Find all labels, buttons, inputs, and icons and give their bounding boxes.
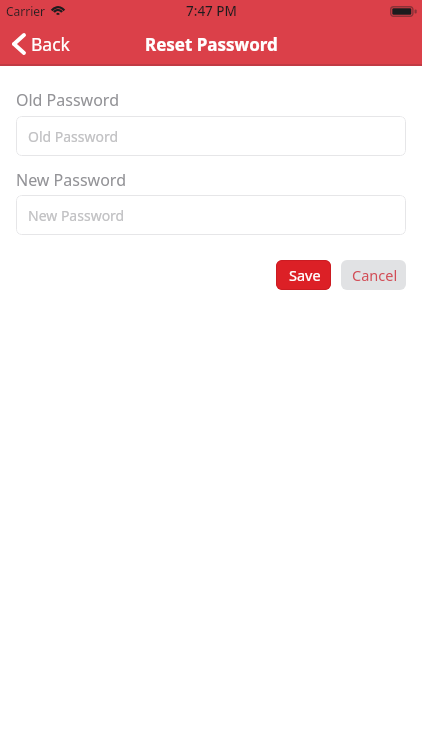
staticText: Carrier [6, 3, 46, 19]
staticText: Save [289, 265, 321, 285]
staticText: 7:47 PM [186, 2, 237, 20]
staticText: New Password [28, 206, 125, 225]
staticText: Cancel [352, 265, 398, 285]
button[interactable]: Old Password [16, 116, 406, 156]
staticText: Back [31, 32, 70, 56]
button[interactable]: Save [276, 260, 331, 290]
button[interactable]: New Password [16, 195, 406, 235]
staticText: New Password [16, 169, 126, 191]
staticText: Reset Password [145, 33, 278, 56]
button[interactable]: Cancel [341, 260, 406, 290]
other: Battery full [390, 6, 418, 17]
button[interactable]: Back [0, 26, 80, 62]
staticText: Old Password [28, 127, 119, 146]
other: Wi-Fi signal [51, 5, 65, 18]
staticText: Old Password [16, 89, 119, 111]
